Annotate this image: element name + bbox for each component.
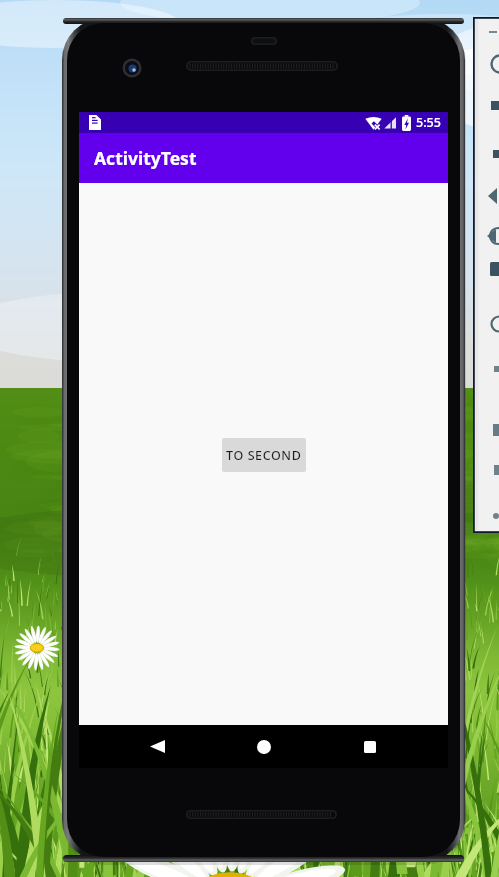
- button[interactable]: TO SECOND: [222, 438, 306, 472]
- staticText: 5:55: [416, 114, 441, 131]
- staticText: TO SECOND: [226, 447, 302, 464]
- staticText: ActivityTest: [94, 146, 197, 170]
- button[interactable]: Back: [129, 725, 185, 768]
- button[interactable]: Home: [236, 725, 292, 768]
- button[interactable]: Recent apps: [342, 725, 398, 768]
